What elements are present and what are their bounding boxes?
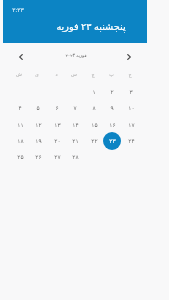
button[interactable]: ۲۳ bbox=[103, 132, 121, 150]
staticText: ۱۷ bbox=[128, 122, 135, 129]
staticText: ۲:۲۳ bbox=[12, 6, 24, 14]
staticText: ۱ bbox=[92, 89, 96, 96]
staticText: پ bbox=[109, 72, 114, 78]
staticText: ۱۳ bbox=[54, 122, 61, 129]
button[interactable]: ۲۷ bbox=[48, 148, 66, 166]
staticText: چ bbox=[91, 72, 95, 78]
button[interactable]: ۱۴ bbox=[66, 116, 84, 134]
staticText: ۲۵ bbox=[17, 154, 24, 161]
button[interactable]: ۳ bbox=[122, 83, 140, 101]
staticText: ۲۷ bbox=[54, 154, 61, 161]
staticText: ۸ bbox=[92, 105, 96, 112]
staticText: ج bbox=[128, 72, 132, 78]
button[interactable]: ۱۳ bbox=[48, 116, 66, 134]
staticText: پنجشنبه ۲۳ فوریه bbox=[56, 20, 126, 33]
staticText: ۲۸ bbox=[72, 154, 79, 161]
button[interactable]: ۲۵ bbox=[11, 148, 29, 166]
button[interactable]: ۶ bbox=[48, 99, 66, 117]
button[interactable]: ۱۰ bbox=[122, 99, 140, 117]
button[interactable]: ۱۶ bbox=[103, 116, 121, 134]
staticText: ۳ bbox=[129, 89, 133, 96]
staticText: ۱۸ bbox=[17, 138, 24, 145]
staticText: ۱۵ bbox=[91, 122, 98, 129]
staticText: ۲۰ bbox=[54, 138, 61, 145]
staticText: ی bbox=[35, 72, 39, 78]
button[interactable]: Previous month bbox=[15, 51, 27, 63]
button[interactable]: ۱۸ bbox=[11, 132, 29, 150]
staticText: ۲ bbox=[110, 89, 114, 96]
button[interactable]: ۱۷ bbox=[122, 116, 140, 134]
button[interactable]: ۲ bbox=[103, 83, 121, 101]
staticText: ۱۹ bbox=[35, 138, 42, 145]
staticText: ۲۳ bbox=[109, 138, 116, 145]
staticText: ۲۶ bbox=[35, 154, 42, 161]
button[interactable]: ۱۵ bbox=[85, 116, 103, 134]
button[interactable]: ۱ bbox=[85, 83, 103, 101]
button[interactable]: ۲۰ bbox=[48, 132, 66, 150]
staticText: ۱۱ bbox=[17, 122, 24, 129]
button[interactable]: ۵ bbox=[29, 99, 47, 117]
button[interactable]: ۱۲ bbox=[29, 116, 47, 134]
staticText: ۱۲ bbox=[35, 122, 42, 129]
staticText: ۲۴ bbox=[128, 138, 135, 145]
button[interactable]: ۹ bbox=[103, 99, 121, 117]
staticText: ۴ bbox=[18, 105, 22, 112]
button[interactable]: ۲۸ bbox=[66, 148, 84, 166]
staticText: ۱۰ bbox=[128, 105, 135, 112]
button[interactable]: ۲۱ bbox=[66, 132, 84, 150]
staticText: ۱۶ bbox=[109, 122, 116, 129]
button[interactable]: ۴ bbox=[11, 99, 29, 117]
staticText: ۷ bbox=[73, 105, 77, 112]
staticText: ۹ bbox=[110, 105, 114, 112]
staticText: ۲۲ bbox=[91, 138, 98, 145]
staticText: ۱۴ bbox=[72, 122, 79, 129]
staticText: فوریه ۲۰۲۳ bbox=[65, 52, 87, 58]
button[interactable]: Next month bbox=[123, 51, 135, 63]
staticText: ۵ bbox=[36, 105, 40, 112]
staticText: ۶ bbox=[55, 105, 59, 112]
staticText: س bbox=[71, 72, 77, 78]
button[interactable]: ۲۶ bbox=[29, 148, 47, 166]
button[interactable]: ۸ bbox=[85, 99, 103, 117]
button[interactable]: ۲۴ bbox=[122, 132, 140, 150]
staticText: ش bbox=[16, 72, 22, 78]
button[interactable]: ۱۱ bbox=[11, 116, 29, 134]
button[interactable]: ۱۹ bbox=[29, 132, 47, 150]
button[interactable]: ۷ bbox=[66, 99, 84, 117]
button[interactable]: ۲۲ bbox=[85, 132, 103, 150]
staticText: ۲۱ bbox=[72, 138, 79, 145]
staticText: د bbox=[55, 72, 58, 78]
